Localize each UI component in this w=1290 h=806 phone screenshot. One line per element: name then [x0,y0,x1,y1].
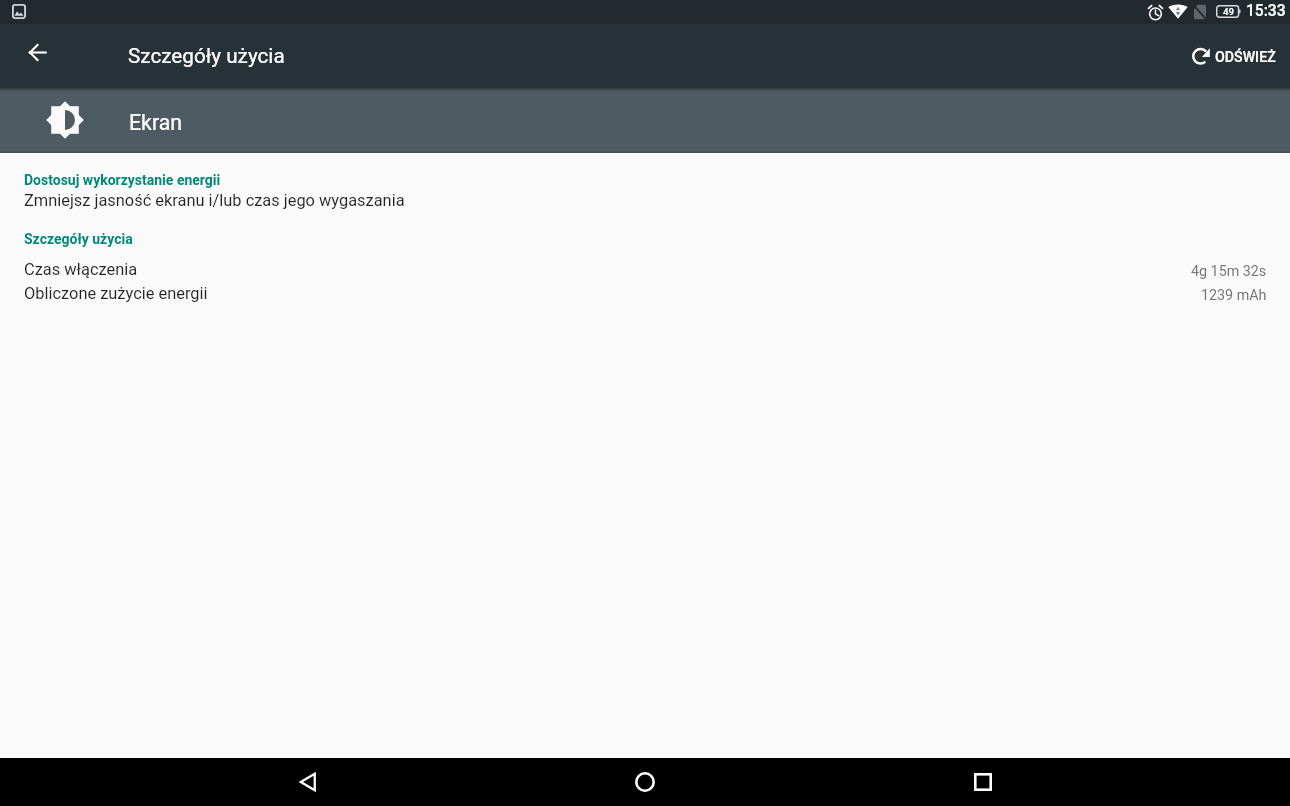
staticText: ODŚWIEŻ [1215,49,1276,66]
button[interactable]: Obliczone zużycie energii [0,284,1290,308]
button[interactable]: Wstecz [9,25,65,81]
staticText: 15:33 [1246,2,1286,20]
button[interactable]: Ekran główny [597,758,693,806]
staticText: Czas włączenia [24,260,138,279]
staticText: Ekran [129,110,183,135]
staticText: Dostosuj wykorzystanie energii [24,172,221,188]
button[interactable]: Przegląd [935,758,1031,806]
button[interactable]: Czas włączenia [0,260,1290,284]
staticText: 4g 15m 32s [1191,263,1267,280]
staticText: Obliczone zużycie energii [24,284,208,303]
staticText: Zmniejsz jasność ekranu i/lub czas jego … [24,191,405,210]
staticText: 1239 mAh [1201,287,1267,304]
button[interactable]: ODŚWIEŻ [1182,34,1286,78]
button[interactable]: Wstecz [259,758,355,806]
staticText: 49 [1223,6,1235,17]
staticText: Szczegóły użycia [128,44,285,68]
staticText: Szczegóły użycia [24,231,133,247]
